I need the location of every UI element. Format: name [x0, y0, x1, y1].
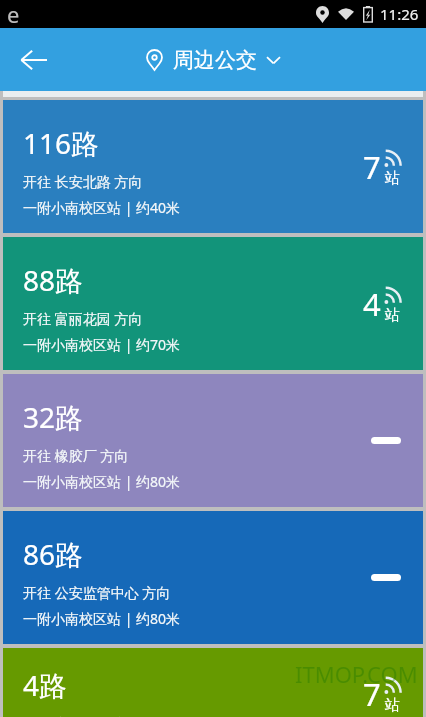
staticText: 站 — [385, 306, 400, 325]
staticText: 7 — [363, 146, 381, 188]
staticText: 116路 — [23, 124, 100, 162]
staticText: 7 — [363, 673, 381, 715]
staticText: 周边公交 — [173, 47, 257, 73]
button[interactable]: 88路 — [3, 237, 423, 370]
staticText: 站 — [385, 169, 400, 188]
button[interactable]: Back — [6, 33, 60, 87]
button[interactable]: 4路 — [3, 648, 423, 717]
staticText: 11:26 — [380, 4, 419, 24]
staticText: 4路 — [23, 666, 68, 704]
staticText: 一附小南校区站 | 约80米 — [23, 472, 181, 491]
staticText: 一附小南校区站 | 约80米 — [23, 609, 181, 628]
staticText: 开往 橡胶厂 方向 — [23, 446, 129, 465]
staticText: 4 — [363, 283, 381, 325]
staticText: 32路 — [23, 398, 84, 436]
staticText: ITMOP.COM — [295, 659, 418, 689]
staticText: 站 — [385, 696, 400, 715]
staticText: 88路 — [23, 261, 84, 299]
button[interactable]: 116路 — [3, 100, 423, 233]
staticText: 86路 — [23, 535, 84, 573]
staticText: 一附小南校区站 | 约40米 — [23, 198, 181, 217]
staticText: 一附小南校区站 | 约70米 — [23, 335, 181, 354]
button[interactable]: 32路 — [3, 374, 423, 507]
staticText: 开往 公安监管中心 方向 — [23, 583, 171, 602]
staticText: 开往 长安北路 方向 — [23, 172, 143, 191]
button[interactable]: 86路 — [3, 511, 423, 644]
button[interactable]: 周边公交 — [139, 43, 288, 77]
staticText: e — [7, 0, 20, 27]
staticText: 开往 富丽花园 方向 — [23, 309, 143, 328]
